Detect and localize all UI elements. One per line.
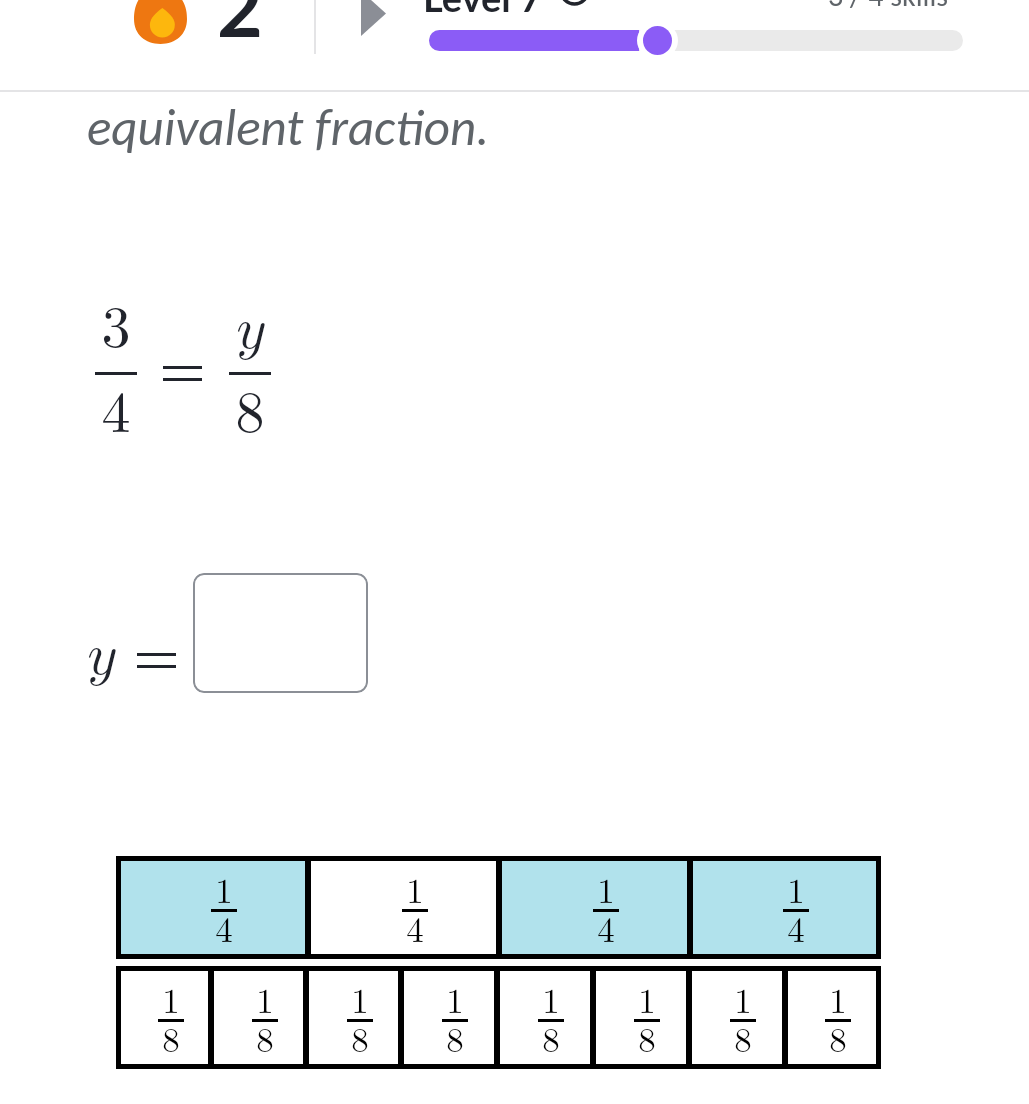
button[interactable]: Level progress xyxy=(429,30,963,51)
staticText: 8 xyxy=(351,1024,369,1059)
staticText: 4 xyxy=(597,914,615,949)
staticText: 4 xyxy=(215,914,233,949)
staticText: 8 xyxy=(446,1024,464,1059)
staticText: 8 xyxy=(734,1024,752,1059)
button[interactable]: 1 xyxy=(404,971,494,1064)
staticText: 3 / 4 skills xyxy=(828,0,949,14)
button[interactable]: Daily streak xyxy=(134,0,187,44)
staticText: 8 xyxy=(829,1024,847,1059)
staticText: 8 xyxy=(256,1024,274,1059)
button[interactable]: 1 xyxy=(500,971,590,1064)
staticText: 8 xyxy=(162,1024,180,1059)
staticText: 1 xyxy=(597,875,615,910)
staticText: 𝑦 xyxy=(87,627,116,685)
staticText: 1 xyxy=(215,875,233,910)
other: Fraction strip of 8 parts xyxy=(116,966,881,1069)
staticText: equivalent fraction. xyxy=(87,96,490,158)
button[interactable]: 1 xyxy=(693,861,876,954)
staticText: 1 xyxy=(829,985,847,1020)
staticText: 1 xyxy=(406,875,424,910)
other: Fraction strip of 4 parts xyxy=(116,856,881,959)
staticText: 1 xyxy=(446,985,464,1020)
staticText: 3 xyxy=(101,300,131,358)
button[interactable]: 1 xyxy=(311,861,496,954)
button[interactable]: 1 xyxy=(309,971,398,1064)
staticText: 1 xyxy=(351,985,369,1020)
button[interactable]: 1 xyxy=(121,861,305,954)
staticText: 1 xyxy=(638,985,656,1020)
button[interactable]: Play xyxy=(361,0,386,36)
staticText: 1 xyxy=(542,985,560,1020)
staticText: 1 xyxy=(256,985,274,1020)
button[interactable]: 2 xyxy=(217,0,263,54)
staticText: 1 xyxy=(734,985,752,1020)
button[interactable]: 1 xyxy=(692,971,782,1064)
button[interactable]: 1 xyxy=(788,971,876,1064)
staticText: 1 xyxy=(787,875,805,910)
staticText: 8 xyxy=(638,1024,656,1059)
button[interactable]: Answer input box xyxy=(193,573,368,693)
staticText: 8 xyxy=(542,1024,560,1059)
staticText: 4 xyxy=(101,385,131,443)
button[interactable]: 1 xyxy=(596,971,686,1064)
button[interactable]: 1 xyxy=(121,971,208,1064)
staticText: 4 xyxy=(787,914,805,949)
staticText: 8 xyxy=(235,385,265,443)
staticText: 4 xyxy=(406,914,424,949)
staticText: 1 xyxy=(162,985,180,1020)
button[interactable]: 1 xyxy=(214,971,303,1064)
button[interactable]: Level info xyxy=(559,0,590,6)
button[interactable]: 1 xyxy=(502,861,687,954)
staticText: 𝑦 xyxy=(236,301,265,359)
button[interactable]: Level 7 xyxy=(423,0,543,20)
